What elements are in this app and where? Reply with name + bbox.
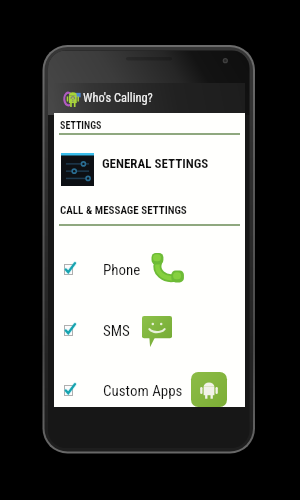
- button[interactable]: Phone: [54, 239, 245, 299]
- staticText: Custom Apps: [103, 382, 183, 400]
- staticText: SMS: [103, 322, 130, 340]
- other: Phone: [149, 252, 185, 284]
- other: SMS: [142, 316, 172, 347]
- staticText: GENERAL SETTINGS: [102, 156, 209, 171]
- staticText: CALL & MESSAGE SETTINGS: [60, 204, 187, 217]
- other: Custom apps: [191, 372, 227, 407]
- staticText: Who's Calling?: [83, 90, 153, 105]
- button[interactable]: Custom Apps: [54, 360, 245, 420]
- staticText: SETTINGS: [60, 120, 102, 132]
- button[interactable]: GENERAL SETTINGS: [54, 142, 245, 194]
- button[interactable]: SMS: [54, 300, 245, 360]
- staticText: Phone: [103, 261, 141, 279]
- button[interactable]: Who's Calling?: [54, 83, 245, 113]
